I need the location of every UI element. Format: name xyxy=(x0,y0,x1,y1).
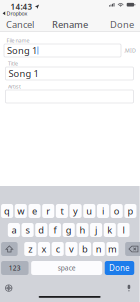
button[interactable]: o xyxy=(111,204,123,218)
button[interactable]: q xyxy=(1,204,13,218)
button[interactable]: f xyxy=(49,223,61,237)
staticText: Dropbox xyxy=(7,10,28,17)
button[interactable]: Done xyxy=(105,261,134,275)
staticText: o xyxy=(114,205,120,217)
button[interactable]: h xyxy=(76,223,88,237)
button[interactable]: p xyxy=(124,204,136,218)
staticText: Done xyxy=(109,263,130,273)
staticText: l xyxy=(122,224,124,236)
staticText: h xyxy=(79,224,85,236)
button[interactable]: Dictate xyxy=(123,281,135,295)
button[interactable]: Cancel xyxy=(2,15,38,34)
staticText: Rename xyxy=(52,18,88,31)
staticText: q xyxy=(4,205,10,217)
button[interactable]: v xyxy=(65,242,77,256)
button[interactable]: z xyxy=(24,242,36,256)
staticText: u xyxy=(86,205,92,217)
button[interactable]: w xyxy=(15,204,27,218)
staticText: Cancel xyxy=(6,18,34,31)
staticText: Done xyxy=(110,18,134,31)
staticText: f xyxy=(53,224,56,236)
staticText: space xyxy=(58,264,76,272)
button[interactable]: s xyxy=(22,223,34,237)
button[interactable]: g xyxy=(63,223,75,237)
staticText: n xyxy=(96,243,102,255)
button[interactable]: space xyxy=(31,261,102,275)
button[interactable]: l xyxy=(117,223,130,237)
button[interactable]: j xyxy=(90,223,102,237)
button[interactable]: a xyxy=(8,223,20,237)
button[interactable]: Next keyboard xyxy=(2,281,15,295)
staticText: p xyxy=(127,205,133,217)
staticText: r xyxy=(46,205,50,217)
staticText: 14:43 xyxy=(10,1,32,12)
button[interactable]: Shift xyxy=(1,242,18,256)
staticText: Title xyxy=(8,60,18,67)
button[interactable]: Song 1 xyxy=(4,44,121,57)
staticText: b xyxy=(82,243,88,255)
button[interactable]: t xyxy=(56,204,68,218)
staticText: t xyxy=(60,205,63,217)
staticText: v xyxy=(69,243,74,255)
button[interactable]: Done xyxy=(106,15,138,34)
staticText: Artist xyxy=(8,83,21,90)
button[interactable]: k xyxy=(104,223,116,237)
staticText: s xyxy=(26,224,30,236)
staticText: j xyxy=(95,224,97,236)
staticText: File name xyxy=(6,37,29,44)
staticText: c xyxy=(56,243,60,255)
staticText: y xyxy=(73,205,78,217)
staticText: x xyxy=(41,243,46,255)
button[interactable]: x xyxy=(38,242,50,256)
button[interactable]: e xyxy=(28,204,41,218)
button[interactable]: b xyxy=(79,242,91,256)
staticText: .MID xyxy=(124,47,136,54)
button[interactable]: i xyxy=(97,204,109,218)
button[interactable]: d xyxy=(35,223,47,237)
button[interactable]: m xyxy=(106,242,119,256)
staticText: g xyxy=(66,224,72,236)
staticText: 123 xyxy=(9,264,21,272)
button[interactable]: 123 xyxy=(1,261,29,275)
button[interactable]: Delete xyxy=(125,242,140,256)
staticText: Song 1 xyxy=(8,67,38,80)
staticText: z xyxy=(28,243,32,255)
staticText: k xyxy=(107,224,112,236)
staticText: w xyxy=(17,205,24,217)
button[interactable]: u xyxy=(83,204,95,218)
button[interactable]: r xyxy=(42,204,54,218)
staticText: Song 1 xyxy=(7,44,37,57)
button[interactable] xyxy=(5,90,133,103)
staticText: a xyxy=(11,224,16,236)
button[interactable]: Song 1 xyxy=(5,67,133,80)
button[interactable]: c xyxy=(52,242,64,256)
staticText: m xyxy=(108,243,117,255)
staticText: d xyxy=(38,224,44,236)
button[interactable]: n xyxy=(93,242,105,256)
staticText: e xyxy=(32,205,37,217)
button[interactable]: y xyxy=(70,204,82,218)
staticText: i xyxy=(102,205,104,217)
button[interactable]: Dropbox xyxy=(3,10,28,17)
